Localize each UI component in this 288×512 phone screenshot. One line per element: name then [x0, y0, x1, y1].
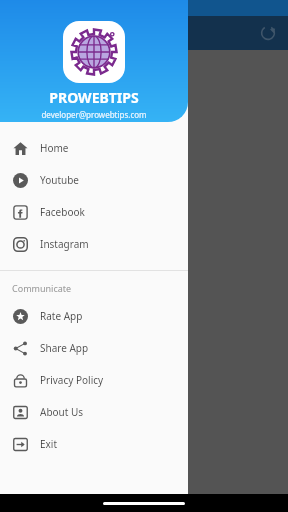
staticText: Youtube: [40, 173, 79, 187]
staticText: Instagram: [40, 237, 89, 251]
button[interactable]: Home: [0, 132, 188, 164]
button[interactable]: Rate App: [0, 300, 188, 332]
staticText: developer@prowebtips.com: [41, 109, 147, 120]
staticText: PROWEBTIPS: [49, 88, 139, 107]
staticText: Exit: [40, 437, 58, 451]
button[interactable]: About Us: [0, 396, 188, 428]
staticText: Facebook: [40, 205, 85, 219]
button[interactable]: Exit: [0, 428, 188, 460]
button[interactable]: Share App: [0, 332, 188, 364]
button[interactable]: Instagram: [0, 228, 188, 260]
button[interactable]: Privacy Policy: [0, 364, 188, 396]
button[interactable]: Facebook: [0, 196, 188, 228]
staticText: Communicate: [12, 282, 72, 294]
button[interactable]: Refresh: [256, 21, 280, 45]
staticText: Privacy Policy: [40, 373, 104, 387]
staticText: Rate App: [40, 309, 83, 323]
staticText: About Us: [40, 405, 84, 419]
button[interactable]: Youtube: [0, 164, 188, 196]
staticText: Home: [40, 141, 69, 155]
staticText: Share App: [40, 341, 89, 355]
